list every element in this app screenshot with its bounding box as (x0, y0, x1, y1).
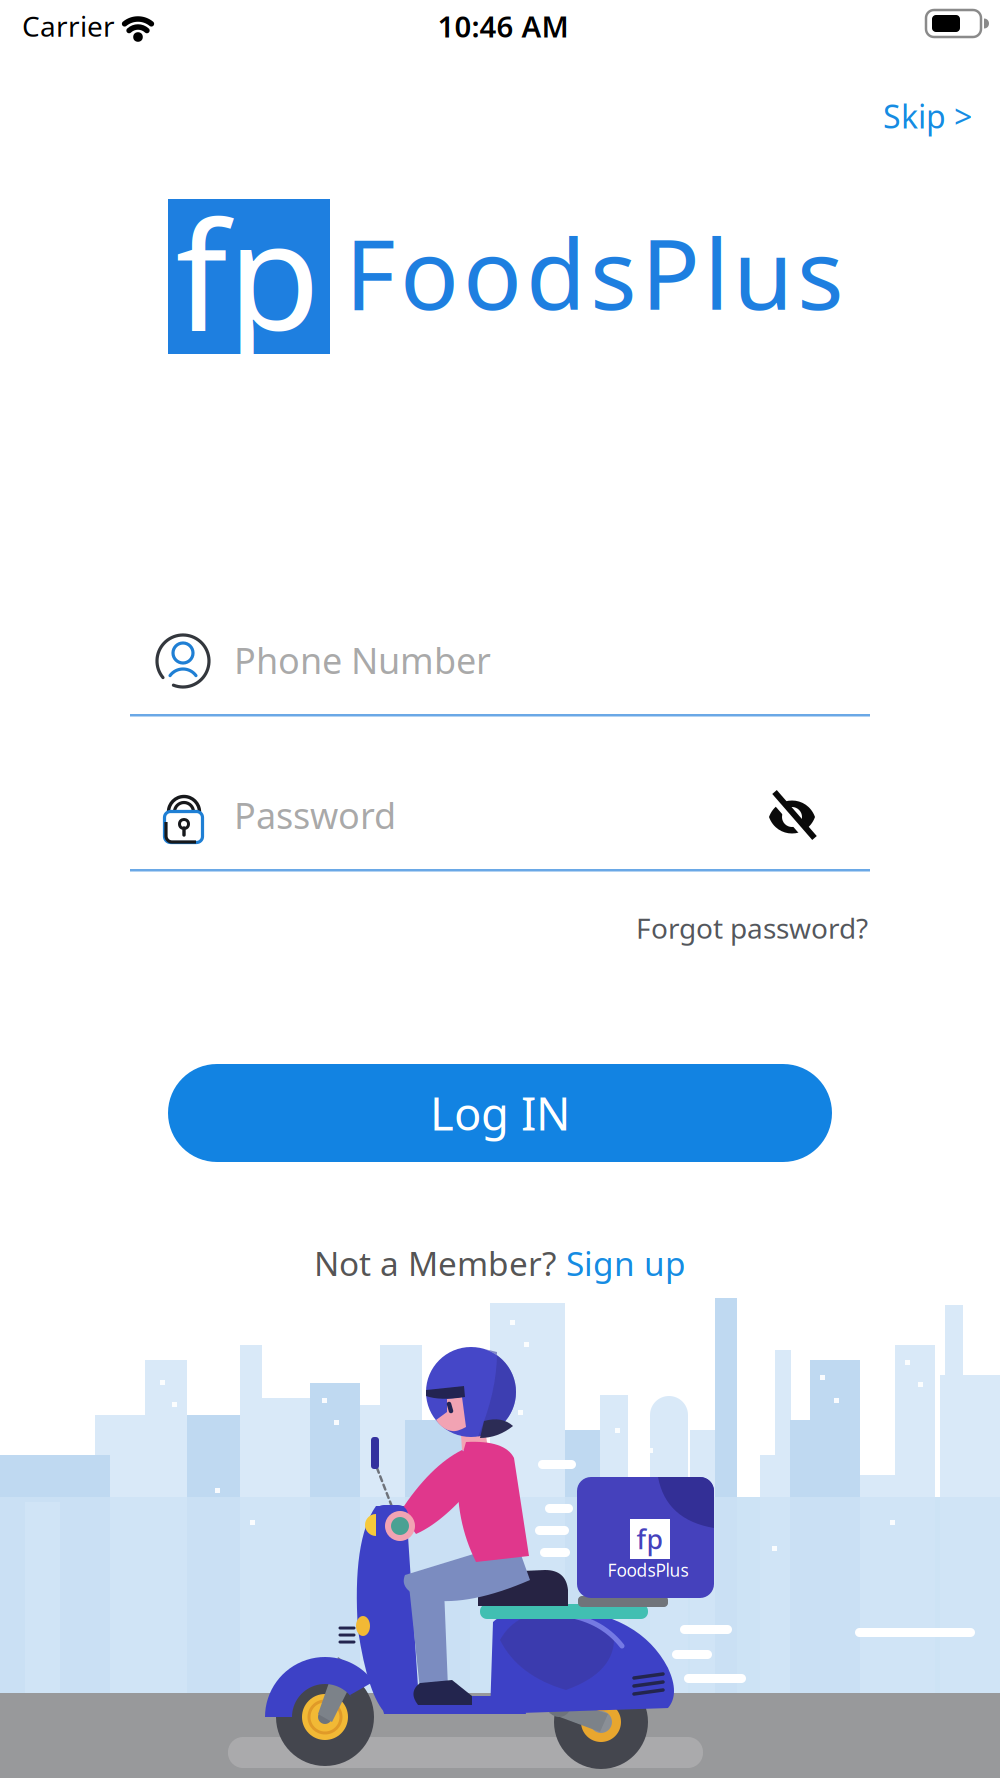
button[interactable]: Show password (757, 782, 827, 852)
staticText: Carrier (22, 7, 115, 45)
staticText: fp (175, 172, 320, 372)
staticText: Log IN (430, 1083, 570, 1143)
button[interactable]: Log IN (168, 1064, 832, 1162)
staticText: Sign up (566, 1241, 686, 1285)
staticText: Phone Number (234, 636, 491, 684)
staticText: 10:46 AM (437, 6, 568, 45)
staticText: Forgot password? (636, 909, 868, 947)
staticText: Password (234, 791, 396, 839)
staticText: Not a Member? (314, 1241, 556, 1285)
staticText: Skip > (883, 95, 972, 137)
button[interactable]: Sign up (566, 1241, 686, 1285)
button[interactable]: Skip > (772, 92, 972, 140)
staticText: FoodsPlus (345, 207, 844, 337)
button[interactable]: Forgot password? (448, 903, 868, 953)
staticText: fp (636, 1521, 663, 1557)
staticText: FoodsPlus (607, 1558, 688, 1581)
